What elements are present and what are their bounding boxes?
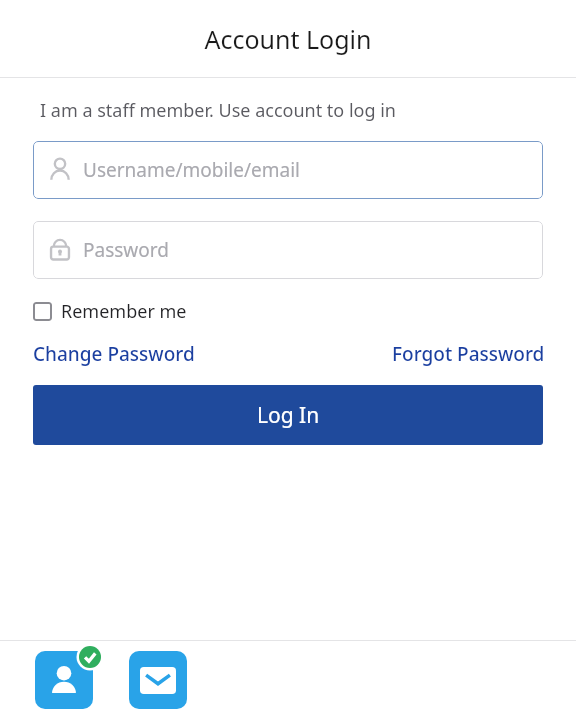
button[interactable]: Forgot Password: [392, 341, 545, 367]
staticText: Account Login: [204, 22, 372, 56]
button[interactable]: Username/mobile/email: [33, 141, 543, 199]
button[interactable]: Log In: [33, 385, 543, 445]
staticText: Forgot Password: [392, 341, 545, 367]
staticText: Change Password: [33, 341, 195, 367]
button[interactable]: Verified account: [35, 651, 111, 709]
button[interactable]: Change Password: [33, 341, 195, 367]
staticText: Password: [83, 237, 169, 263]
staticText: Remember me: [61, 299, 187, 324]
staticText: I am a staff member. Use account to log …: [40, 98, 396, 123]
button[interactable]: Messages: [129, 651, 187, 709]
staticText: Username/mobile/email: [83, 157, 300, 183]
staticText: Log In: [257, 401, 320, 430]
button[interactable]: Password: [33, 221, 543, 279]
button[interactable]: Remember me: [33, 299, 187, 324]
